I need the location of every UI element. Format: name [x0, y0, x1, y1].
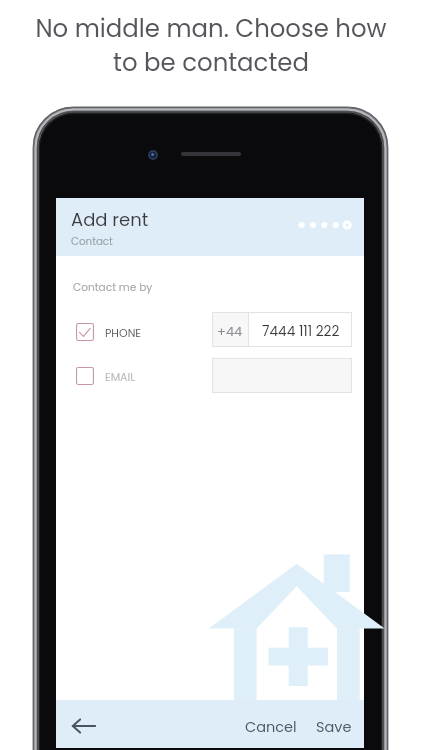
staticText: Save [316, 717, 352, 737]
staticText: Contact [71, 234, 113, 248]
staticText: 7444 111 222 [262, 322, 340, 341]
staticText: EMAIL [105, 369, 135, 384]
button[interactable] [212, 358, 352, 393]
staticText: +44 [217, 322, 243, 340]
staticText: PHONE [105, 325, 142, 340]
staticText: Add rent [71, 207, 149, 232]
button[interactable]: PHONE [76, 319, 142, 345]
staticText: Cancel [245, 717, 297, 737]
button[interactable]: EMAIL [76, 363, 135, 389]
button[interactable]: Cancel [241, 711, 301, 743]
staticText: No middle man. Choose how to be contacte… [35, 11, 387, 80]
staticText: Contact me by [73, 280, 153, 295]
button[interactable]: Save [312, 711, 356, 743]
button[interactable]: +44 [212, 312, 352, 347]
button[interactable]: Back [65, 707, 103, 745]
